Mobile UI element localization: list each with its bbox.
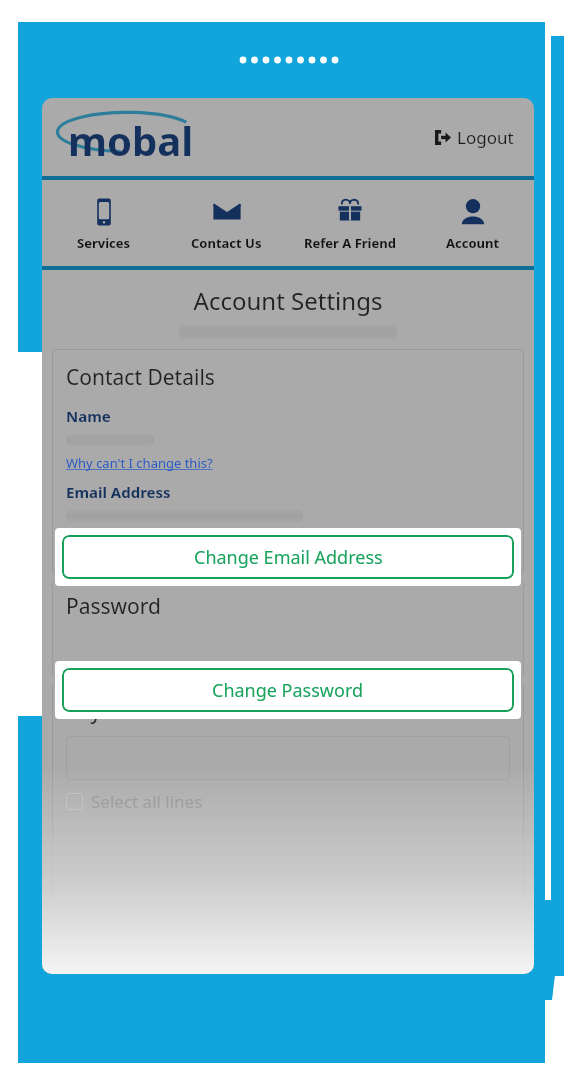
staticText: Contact Details [66,363,215,392]
staticText: Payment Methods [66,697,246,726]
staticText: Email Address [66,482,171,502]
staticText: mobal [68,113,194,167]
staticText: Refer A Friend [304,234,396,252]
staticText: Account [446,234,500,252]
staticText: Contact Us [191,234,262,252]
button[interactable]: Change Password [62,668,514,712]
staticText: Password [66,592,161,621]
button[interactable]: Change Email Address [62,535,514,579]
button[interactable]: Services [42,180,165,266]
staticText: Services [77,234,131,252]
staticText: Change Email Address [194,545,383,570]
button[interactable]: Contact Us [165,180,288,266]
staticText: Change Password [212,678,364,703]
button[interactable]: Refer A Friend [288,180,411,266]
staticText: Logout [457,126,514,149]
staticText: Account Settings [42,284,534,317]
button[interactable]: Select all lines [66,790,203,813]
staticText: Name [66,406,111,426]
button[interactable]: Logout [430,122,518,153]
button[interactable]: Account [411,180,534,266]
staticText: Select all lines [91,790,203,813]
button[interactable]: Why can't I change this? [66,454,213,472]
